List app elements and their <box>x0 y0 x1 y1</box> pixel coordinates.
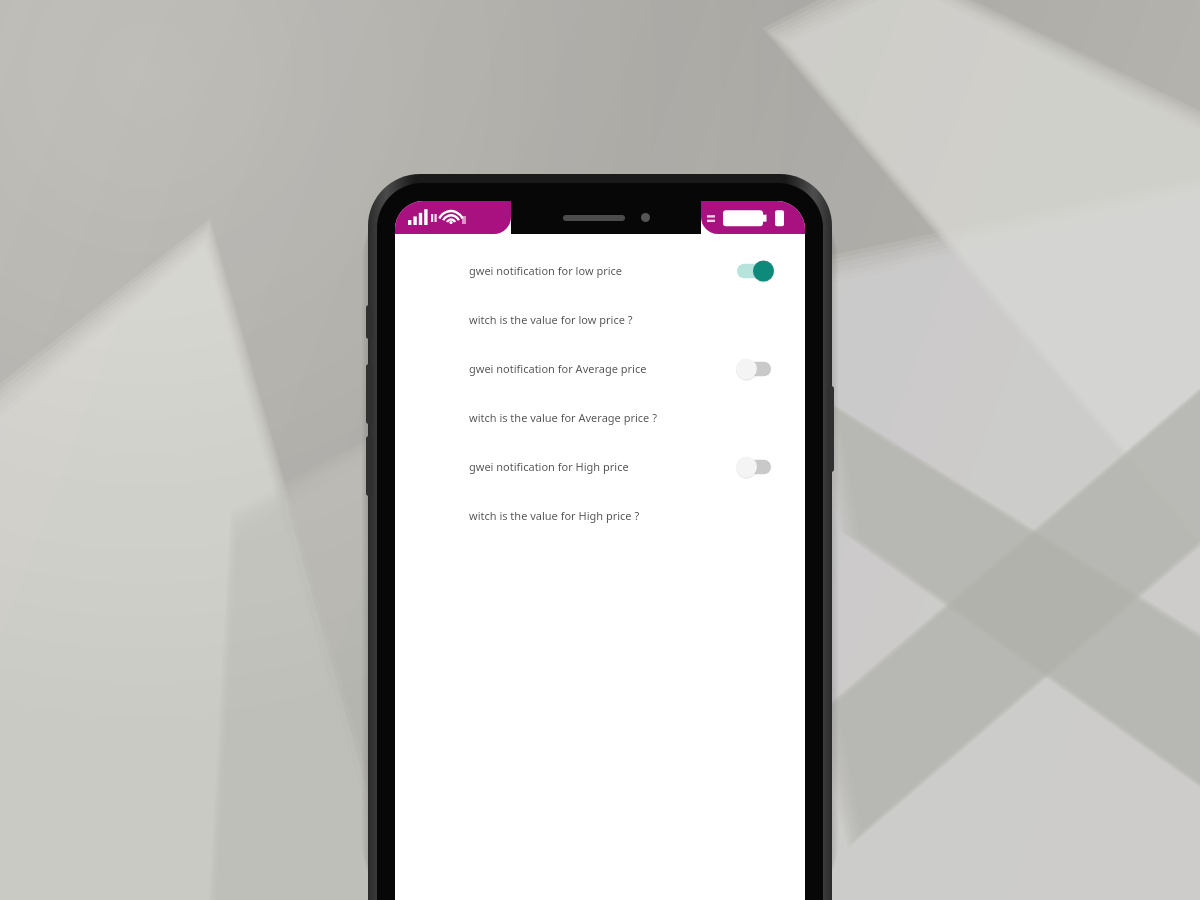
button[interactable]: witch is the value for Average price ? <box>395 393 805 442</box>
button[interactable]: witch is the value for High price ? <box>395 491 805 540</box>
staticText: gwei notification for low price <box>469 263 623 278</box>
button[interactable]: gwei notification for High price <box>395 442 805 491</box>
staticText: witch is the value for High price ? <box>469 508 640 523</box>
button[interactable]: Toggle off <box>735 456 775 478</box>
staticText: witch is the value for low price ? <box>469 312 633 327</box>
staticText: witch is the value for Average price ? <box>469 410 657 425</box>
staticText: gwei notification for Average price <box>469 361 647 376</box>
button[interactable]: gwei notification for Average price <box>395 344 805 393</box>
button[interactable]: Toggle on <box>735 260 775 282</box>
button[interactable]: gwei notification for low price <box>395 246 805 295</box>
button[interactable]: witch is the value for low price ? <box>395 295 805 344</box>
staticText: gwei notification for High price <box>469 459 629 474</box>
button[interactable]: Toggle off <box>735 358 775 380</box>
